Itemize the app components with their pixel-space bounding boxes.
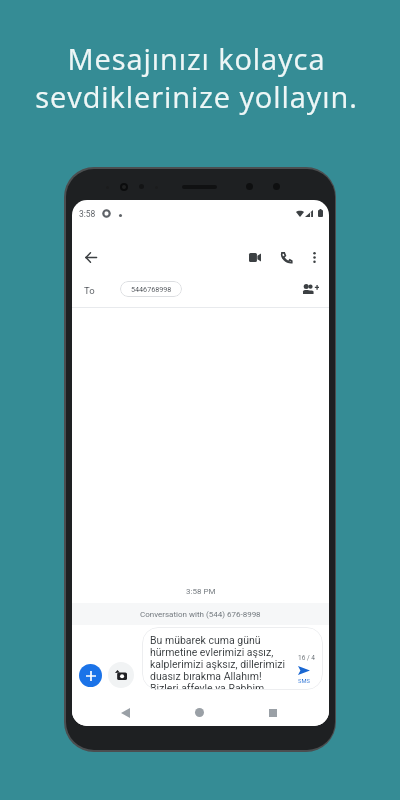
staticText: Bu mübarek cuma günü hürmetine evlerimiz… <box>150 634 290 690</box>
button[interactable]: 5446768998 <box>120 281 182 297</box>
button[interactable]: Send SMS <box>292 663 316 687</box>
button[interactable]: Video call <box>242 244 268 270</box>
staticText: Conversation with (544) 676-8998 <box>140 610 261 619</box>
button[interactable]: Recents <box>260 700 285 725</box>
button[interactable]: Back <box>113 700 138 725</box>
staticText: 5446768998 <box>131 285 172 293</box>
button[interactable]: Camera <box>108 662 134 688</box>
staticText: 3:58 PM <box>186 587 216 596</box>
button[interactable]: Home <box>187 700 212 725</box>
button[interactable]: Call <box>273 244 299 270</box>
staticText: Mesajınızı kolayca sevdiklerinize yollay… <box>35 39 358 117</box>
button[interactable]: Back <box>78 244 104 270</box>
button[interactable]: Add attachment <box>79 664 102 687</box>
button[interactable]: More options <box>301 244 327 270</box>
button[interactable]: Add people <box>300 278 322 300</box>
staticText: 16 / 4 <box>298 654 315 662</box>
staticText: SMS <box>298 678 310 685</box>
staticText: 3:58 <box>79 209 96 219</box>
staticText: To <box>84 285 95 296</box>
